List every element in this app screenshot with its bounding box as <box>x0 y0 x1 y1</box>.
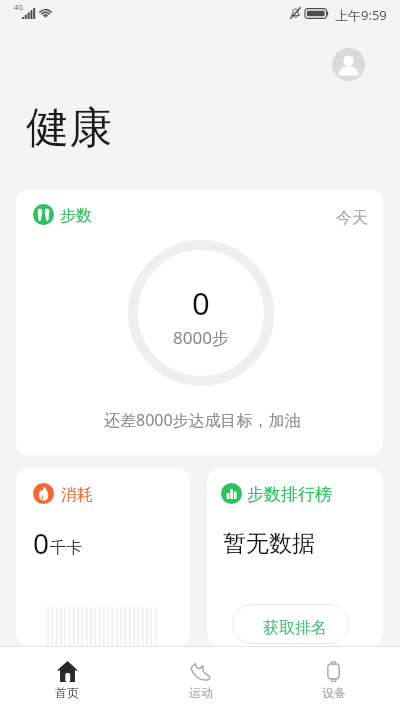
staticText: 步数 <box>60 206 92 226</box>
staticText: 获取排名 <box>263 618 327 638</box>
staticText: 消耗 <box>61 485 93 505</box>
staticText: 步数排行榜 <box>247 484 332 505</box>
staticText: 千卡 <box>50 538 82 558</box>
staticText: 还差8000步达成目标，加油 <box>104 409 301 431</box>
button[interactable]: 首页 <box>0 647 134 710</box>
button[interactable]: 运动 <box>134 647 267 710</box>
staticText: 4G <box>14 3 24 13</box>
staticText: 0 <box>33 524 50 562</box>
staticText: 今天 <box>336 208 368 228</box>
staticText: 首页 <box>55 685 79 700</box>
staticText: 运动 <box>189 685 213 700</box>
button[interactable]: Profile <box>332 48 365 81</box>
button[interactable]: 步数排行榜 <box>207 469 383 646</box>
button[interactable]: 步数 <box>16 190 383 455</box>
staticText: 8000步 <box>173 326 229 349</box>
button[interactable]: 设备 <box>267 647 400 710</box>
staticText: 健康 <box>26 101 112 155</box>
button[interactable]: 消耗 <box>16 469 190 646</box>
button[interactable]: 获取排名 <box>232 604 349 644</box>
staticText: 上午9:59 <box>335 6 387 24</box>
staticText: 0 <box>192 282 210 324</box>
staticText: 暂无数据 <box>223 529 315 558</box>
staticText: 设备 <box>322 685 346 700</box>
